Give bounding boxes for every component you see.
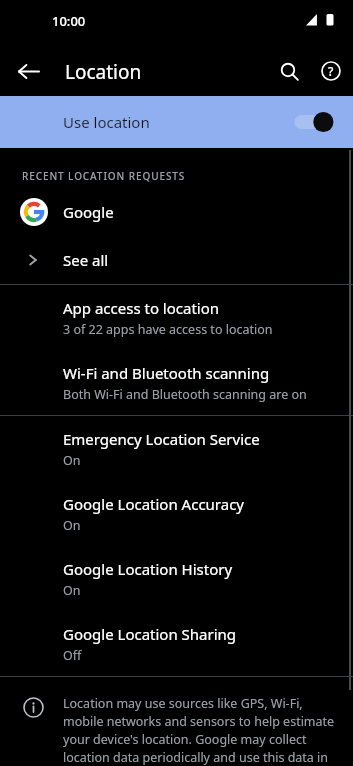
button[interactable]: Google Location History [0,546,353,611]
button[interactable]: Google Location Sharing [0,611,353,676]
staticText: ? [328,63,334,79]
staticText: See all [63,250,109,270]
button[interactable]: Emergency Location Service [0,416,353,481]
button[interactable]: Use location [0,96,353,148]
button[interactable]: App access to location [0,285,353,350]
staticText: App access to location [63,298,220,318]
button[interactable]: Wi-Fi and Bluetooth scanning [0,350,353,415]
staticText: Off [63,647,82,664]
button[interactable]: Back [8,51,48,91]
button[interactable]: Search [269,51,309,91]
staticText: 3 of 22 apps have access to location [63,321,273,338]
staticText: On [63,582,81,599]
staticText: Location may use sources like GPS, Wi-Fi… [63,695,337,766]
staticText: 10:00 [52,12,86,30]
button[interactable]: Use location toggle [293,108,339,136]
staticText: Wi-Fi and Bluetooth scanning [63,363,270,383]
button[interactable]: See all [0,236,353,284]
staticText: RECENT LOCATION REQUESTS [22,169,186,183]
staticText: Both Wi-Fi and Bluetooth scanning are on [63,386,307,403]
staticText: Use location [63,112,150,132]
staticText: Emergency Location Service [63,429,260,449]
staticText: Google [63,202,114,222]
button[interactable]: Google [0,188,353,236]
staticText: On [63,452,81,469]
button[interactable]: Help [311,51,351,91]
staticText: Location [65,59,142,85]
staticText: Google Location History [63,559,233,579]
staticText: Google Location Accuracy [63,494,245,514]
staticText: On [63,517,81,534]
button[interactable]: Google Location Accuracy [0,481,353,546]
staticText: Google Location Sharing [63,624,237,644]
